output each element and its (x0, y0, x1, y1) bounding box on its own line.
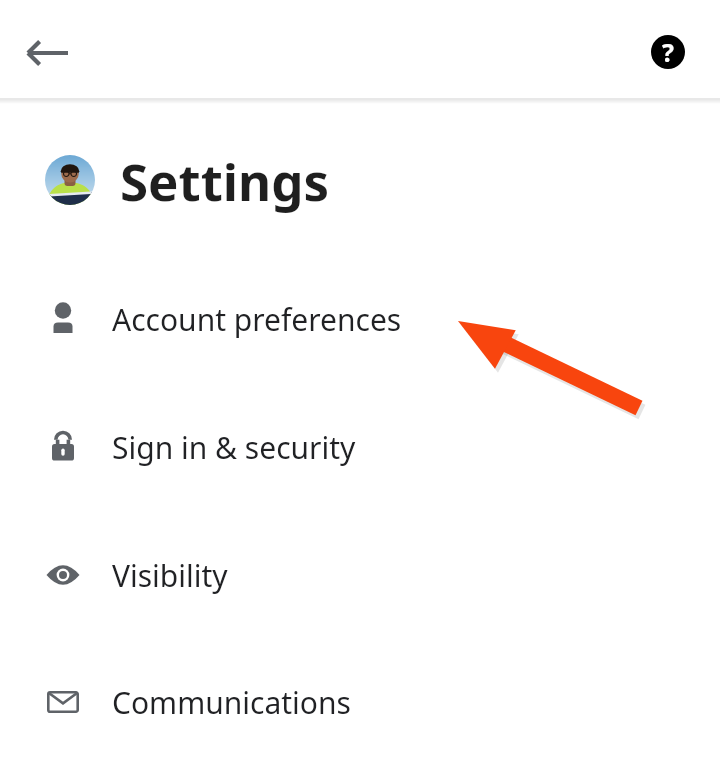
button[interactable]: Back (14, 19, 82, 87)
button[interactable]: Sign in & security (0, 411, 720, 483)
staticText: Communications (112, 682, 351, 723)
staticText: Settings (120, 146, 330, 215)
staticText: Account preferences (112, 299, 402, 340)
staticText: ? (662, 35, 674, 69)
button[interactable]: Visibility (0, 539, 720, 611)
staticText: Sign in & security (112, 427, 356, 468)
staticText: Visibility (112, 555, 228, 596)
button[interactable]: Communications (0, 666, 720, 738)
button[interactable]: Account preferences (0, 283, 720, 355)
button[interactable]: Help (634, 18, 702, 86)
